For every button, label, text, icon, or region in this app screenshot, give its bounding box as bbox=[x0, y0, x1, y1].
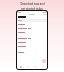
button[interactable] bbox=[17, 36, 47, 40]
button[interactable] bbox=[17, 26, 47, 30]
button[interactable] bbox=[17, 22, 47, 26]
button[interactable] bbox=[17, 44, 47, 48]
button[interactable]: Edit bbox=[43, 14, 46, 15]
button[interactable] bbox=[17, 30, 47, 34]
button[interactable]: Profile bbox=[39, 64, 47, 69]
button[interactable] bbox=[17, 40, 47, 44]
staticText: get started today bbox=[21, 7, 43, 11]
button[interactable] bbox=[17, 50, 47, 54]
staticText: Download now and bbox=[20, 2, 45, 6]
button[interactable]: Home bbox=[17, 64, 24, 69]
button[interactable]: Add bbox=[42, 59, 46, 63]
button[interactable]: Search bbox=[24, 64, 31, 69]
button[interactable]: Lists bbox=[31, 64, 39, 69]
